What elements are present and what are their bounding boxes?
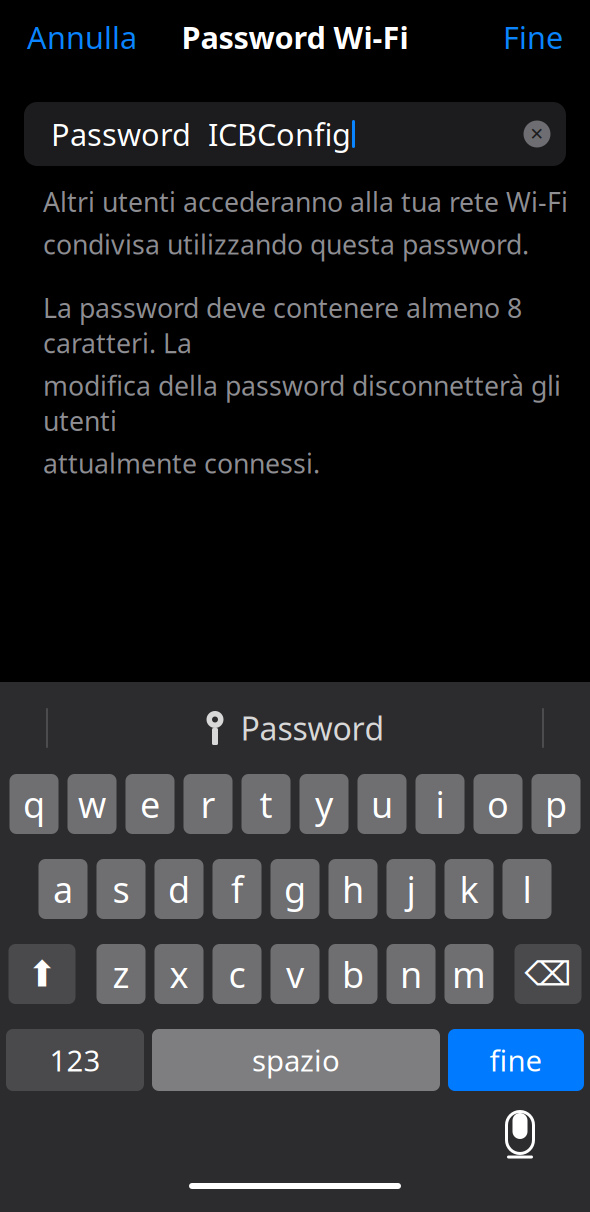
staticText: ICBConfig xyxy=(208,114,351,154)
button[interactable]: c xyxy=(212,944,261,1004)
staticText: x xyxy=(169,950,188,998)
button[interactable]: t xyxy=(241,774,290,834)
button[interactable]: Fine xyxy=(491,9,575,65)
staticText: f xyxy=(231,865,243,913)
staticText: ⌫ xyxy=(524,955,571,993)
button[interactable]: g xyxy=(270,859,319,919)
button[interactable]: k xyxy=(444,859,493,919)
staticText: q xyxy=(23,780,45,828)
staticText: Password xyxy=(51,114,191,154)
staticText: modifica della password disconnetterà gl… xyxy=(43,368,561,438)
staticText: j xyxy=(406,865,415,913)
staticText: Password Wi-Fi xyxy=(181,17,408,57)
button[interactable]: Maiuscole xyxy=(8,944,75,1004)
staticText: Altri utenti accederanno alla tua rete W… xyxy=(43,184,568,219)
staticText: w xyxy=(78,780,106,828)
staticText: Fine xyxy=(503,17,563,57)
staticText: i xyxy=(435,780,444,828)
staticText: y xyxy=(315,780,333,828)
staticText: c xyxy=(228,950,245,998)
staticText: m xyxy=(452,950,486,998)
button[interactable]: v xyxy=(270,944,319,1004)
button[interactable]: Dettatura xyxy=(492,1099,548,1171)
staticText: v xyxy=(286,950,304,998)
button[interactable]: Annulla xyxy=(15,9,149,65)
button[interactable]: m xyxy=(444,944,493,1004)
button[interactable]: o xyxy=(473,774,522,834)
button[interactable]: Password xyxy=(189,701,400,755)
button[interactable]: fine xyxy=(448,1029,584,1091)
button[interactable]: Cancella testo xyxy=(516,113,558,155)
button[interactable]: p xyxy=(531,774,580,834)
staticText: Password xyxy=(240,707,384,749)
button[interactable]: h xyxy=(328,859,377,919)
button[interactable]: y xyxy=(299,774,348,834)
staticText: e xyxy=(140,780,160,828)
staticText: Annulla xyxy=(27,17,137,57)
staticText: g xyxy=(284,865,306,913)
button[interactable]: q xyxy=(9,774,58,834)
button[interactable]: s xyxy=(96,859,145,919)
button[interactable]: x xyxy=(154,944,203,1004)
staticText: condivisa utilizzando questa password. xyxy=(43,226,529,262)
staticText: attualmente connessi. xyxy=(43,445,320,481)
button[interactable]: l xyxy=(502,859,551,919)
staticText: r xyxy=(200,780,215,828)
button[interactable]: d xyxy=(154,859,203,919)
button[interactable]: z xyxy=(96,944,145,1004)
staticText: ⬆ xyxy=(27,954,57,994)
button[interactable]: j xyxy=(386,859,435,919)
button[interactable]: e xyxy=(125,774,174,834)
button[interactable]: u xyxy=(357,774,406,834)
staticText: La password deve contenere almeno 8 cara… xyxy=(43,290,522,361)
staticText: a xyxy=(53,865,73,913)
button[interactable]: b xyxy=(328,944,377,1004)
staticText: 123 xyxy=(49,1040,100,1079)
button[interactable]: spazio xyxy=(152,1029,440,1091)
staticText: u xyxy=(371,780,393,828)
button[interactable]: 123 xyxy=(6,1029,144,1091)
staticText: fine xyxy=(489,1040,542,1079)
staticText: d xyxy=(168,865,190,913)
staticText: b xyxy=(342,950,364,998)
staticText: o xyxy=(487,780,509,828)
staticText: p xyxy=(545,780,567,828)
staticText: spazio xyxy=(252,1040,340,1079)
staticText: l xyxy=(522,865,531,913)
button[interactable]: r xyxy=(183,774,232,834)
button[interactable]: w xyxy=(67,774,116,834)
staticText: h xyxy=(342,865,364,913)
staticText: s xyxy=(112,865,129,913)
button[interactable]: a xyxy=(38,859,87,919)
button[interactable]: Elimina xyxy=(514,944,581,1004)
button[interactable]: f xyxy=(212,859,261,919)
staticText: t xyxy=(259,780,272,828)
button[interactable]: n xyxy=(386,944,435,1004)
staticText: ✕ xyxy=(529,124,544,144)
staticText: n xyxy=(400,950,422,998)
button[interactable]: i xyxy=(415,774,464,834)
staticText: z xyxy=(112,950,129,998)
staticText: k xyxy=(459,865,478,913)
